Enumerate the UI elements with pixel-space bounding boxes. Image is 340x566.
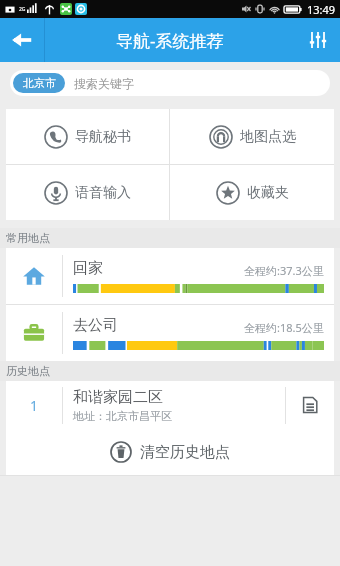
staticText: 全程约:37.3公里: [244, 263, 324, 278]
button[interactable]: Settings: [296, 18, 340, 62]
button[interactable]: 收藏夹: [170, 165, 334, 220]
staticText: 搜索关键字: [74, 76, 134, 91]
button[interactable]: 1: [6, 381, 334, 429]
button[interactable]: 导航秘书: [6, 109, 169, 164]
staticText: 历史地点: [6, 364, 50, 378]
staticText: 地址：北京市昌平区: [73, 409, 172, 423]
button[interactable]: 清空历史地点: [6, 429, 334, 475]
staticText: 北京市: [23, 76, 56, 90]
staticText: 2G: [19, 6, 26, 13]
button[interactable]: 北京市: [10, 70, 330, 96]
staticText: 地图点选: [240, 128, 296, 146]
button[interactable]: 回家: [6, 248, 334, 304]
button[interactable]: Back: [0, 18, 44, 62]
staticText: 去公司: [73, 316, 118, 335]
button[interactable]: Details: [286, 381, 334, 429]
staticText: 和谐家园二区: [73, 388, 163, 407]
staticText: 导航-系统推荐: [116, 29, 224, 52]
staticText: 回家: [73, 259, 103, 278]
staticText: 1: [30, 396, 39, 415]
staticText: 导航秘书: [75, 128, 131, 146]
staticText: 全程约:18.5公里: [244, 320, 324, 335]
button[interactable]: 语音输入: [6, 165, 169, 220]
button[interactable]: 去公司: [6, 305, 334, 361]
staticText: 清空历史地点: [140, 443, 230, 462]
button[interactable]: 地图点选: [170, 109, 334, 164]
staticText: 常用地点: [6, 231, 50, 245]
staticText: 语音输入: [75, 184, 131, 202]
staticText: 13:49: [307, 2, 336, 17]
staticText: 收藏夹: [247, 184, 289, 202]
